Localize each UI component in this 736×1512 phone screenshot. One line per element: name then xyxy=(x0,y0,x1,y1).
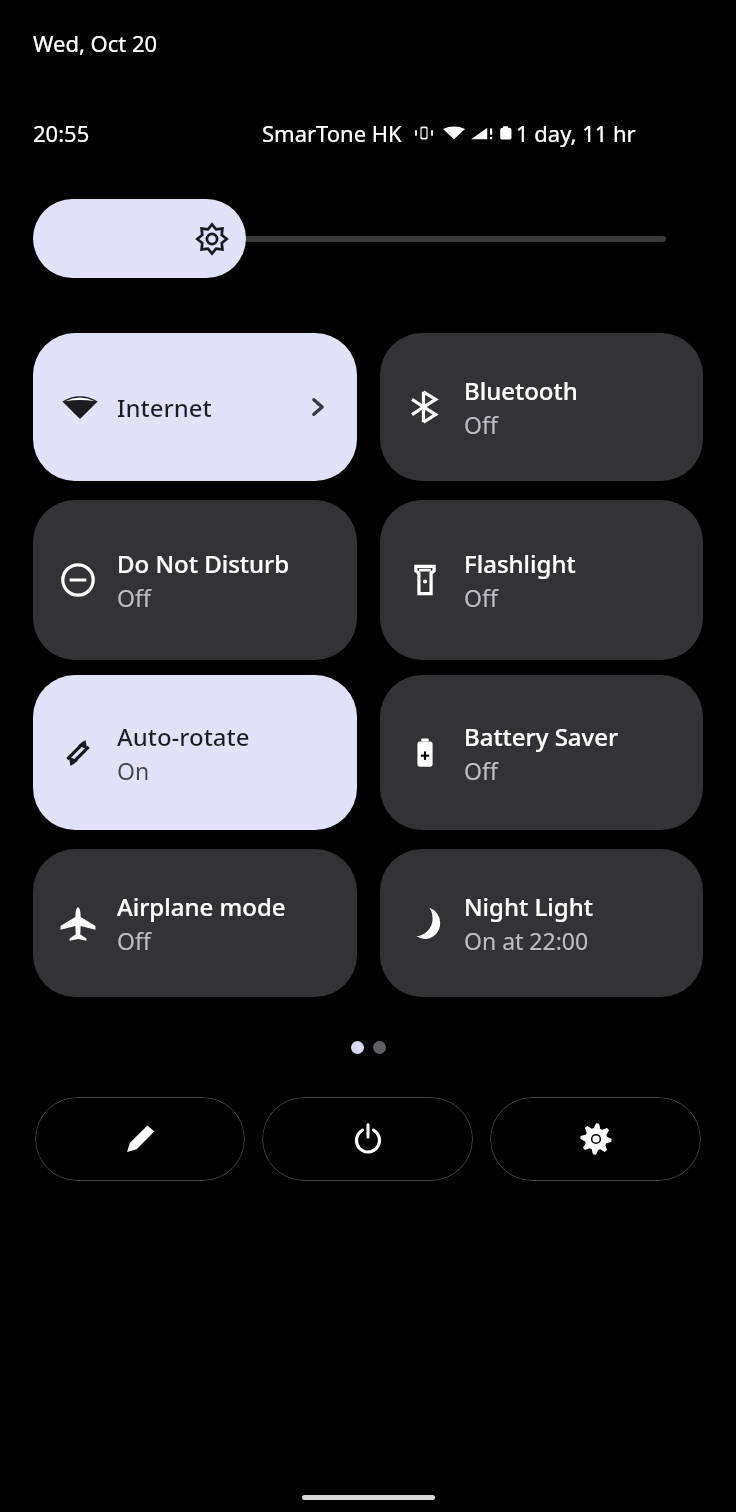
button[interactable]: Internet xyxy=(33,333,357,481)
staticText: Off xyxy=(464,582,498,613)
button[interactable]: Auto-rotate xyxy=(33,675,357,830)
button[interactable]: Power xyxy=(262,1097,473,1181)
staticText: Wed, Oct 20 xyxy=(33,28,158,58)
staticText: 1 day, 11 hr xyxy=(516,118,636,148)
staticText: Airplane mode xyxy=(117,890,286,923)
staticText: Do Not Disturb xyxy=(117,547,290,580)
button[interactable]: Airplane mode xyxy=(33,849,357,997)
button[interactable]: Battery Saver xyxy=(380,675,703,830)
button[interactable]: Night Light xyxy=(380,849,703,997)
button[interactable]: Edit tiles xyxy=(35,1097,245,1181)
staticText: SmarTone HK xyxy=(262,118,402,148)
staticText: Off xyxy=(464,409,498,440)
button[interactable]: Bluetooth xyxy=(380,333,703,481)
staticText: On xyxy=(117,755,150,786)
staticText: On at 22:00 xyxy=(464,925,589,956)
staticText: Flashlight xyxy=(464,547,576,580)
button[interactable]: Settings xyxy=(490,1097,701,1181)
staticText: Auto-rotate xyxy=(117,720,250,753)
staticText: Off xyxy=(117,582,151,613)
staticText: 20:55 xyxy=(33,118,90,148)
staticText: Internet xyxy=(117,391,212,424)
staticText: Night Light xyxy=(464,890,593,923)
staticText: Battery Saver xyxy=(464,720,619,753)
staticText: Off xyxy=(464,755,498,786)
staticText: Bluetooth xyxy=(464,374,578,407)
button[interactable]: Brightness xyxy=(33,199,666,278)
staticText: Off xyxy=(117,925,151,956)
button[interactable]: Flashlight xyxy=(380,500,703,660)
button[interactable]: Do Not Disturb xyxy=(33,500,357,660)
